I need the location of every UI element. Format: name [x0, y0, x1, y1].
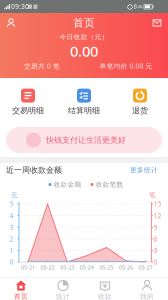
staticText: 收款笔数: [95, 180, 123, 189]
staticText: 退货: [132, 106, 148, 115]
button[interactable]: 更多统计: [0, 163, 38, 173]
staticText: 交易共 0 笔: [24, 62, 60, 70]
staticText: 交易明细: [12, 106, 44, 115]
staticText: 结算明细: [68, 106, 100, 115]
staticText: 4: [9, 211, 13, 220]
staticText: 笔: [149, 191, 156, 199]
staticText: 9: [153, 223, 157, 232]
staticText: 0: [9, 258, 13, 266]
staticText: 05-22: [41, 264, 55, 271]
staticText: 12: [153, 211, 161, 220]
staticText: 15: [153, 200, 161, 208]
staticText: 更多统计: [130, 166, 158, 174]
staticText: 收款金额: [53, 180, 81, 189]
button[interactable]: 交易明细: [0, 88, 56, 116]
button[interactable]: Messages: [146, 13, 168, 33]
staticText: B: [133, 3, 136, 10]
staticText: 09:30: [11, 2, 29, 11]
button[interactable]: 统计: [42, 278, 84, 300]
staticText: 6: [153, 234, 157, 243]
staticText: 快钱支付让生活更美好: [46, 135, 126, 145]
staticText: 05-24: [80, 264, 94, 271]
staticText: 3: [9, 223, 13, 232]
staticText: 2: [9, 234, 13, 243]
staticText: 0.00: [70, 41, 98, 61]
staticText: 近一周收款金额: [6, 165, 62, 175]
staticText: 首页: [73, 16, 95, 29]
staticText: 我的: [140, 293, 154, 300]
button[interactable]: 首页: [0, 278, 42, 300]
staticText: 单笔均价 0.00 元: [99, 62, 152, 70]
staticText: 05-26: [119, 264, 133, 271]
staticText: 5: [9, 200, 13, 208]
button[interactable]: 我的: [126, 278, 168, 300]
staticText: 05-23: [60, 264, 74, 271]
button[interactable]: 快钱支付让生活更美好: [0, 127, 168, 153]
staticText: 05-21: [21, 264, 35, 271]
staticText: 05-25: [99, 264, 113, 271]
staticText: 4G: [138, 4, 143, 9]
staticText: 0: [153, 258, 157, 266]
staticText: 收款: [98, 293, 112, 300]
staticText: 1: [9, 246, 13, 255]
staticText: 统计: [56, 293, 70, 300]
staticText: 元: [11, 191, 18, 199]
staticText: 今日收款（元）: [59, 33, 108, 41]
button[interactable]: 退货: [112, 88, 168, 116]
button[interactable]: 收款: [84, 278, 126, 300]
staticText: 3: [153, 246, 157, 255]
staticText: 首页: [14, 293, 28, 300]
button[interactable]: Profile: [0, 13, 22, 33]
button[interactable]: 结算明细: [56, 88, 112, 116]
staticText: 05-27: [139, 264, 153, 271]
